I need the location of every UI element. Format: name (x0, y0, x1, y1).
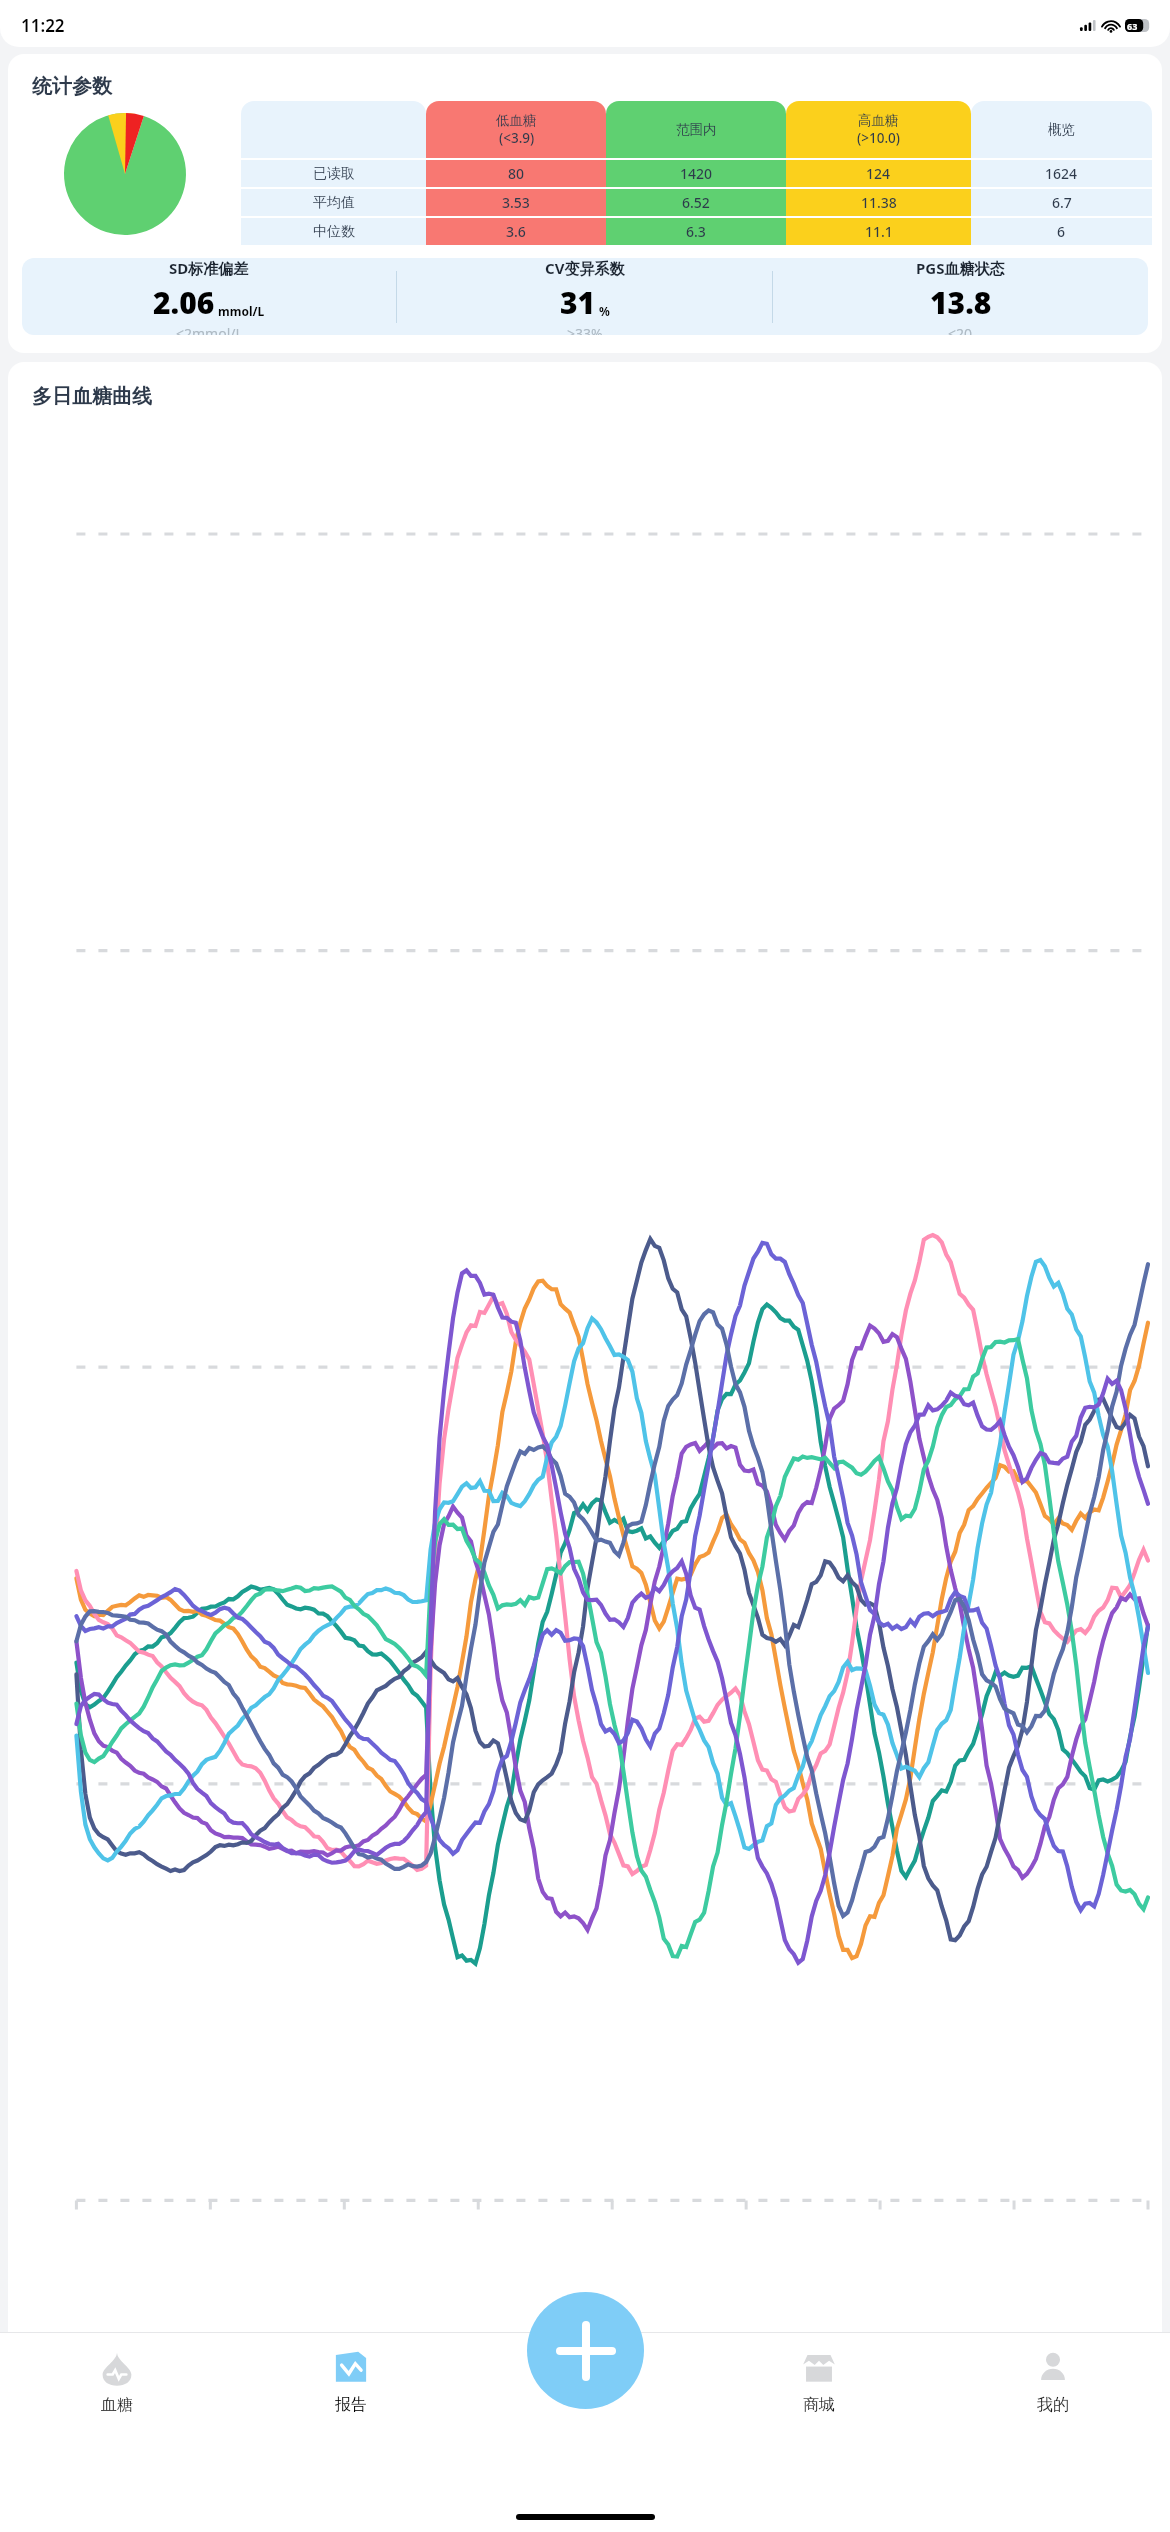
staticText: 已读取 (313, 165, 355, 183)
staticText: 6.3 (686, 222, 706, 241)
button[interactable]: Add record (527, 2292, 644, 2409)
staticText: 6 (1057, 222, 1066, 241)
staticText: 多日血糖曲线 (32, 384, 152, 409)
staticText: <2mmol/L (176, 324, 243, 335)
staticText: CV变异系数 (545, 258, 625, 278)
staticText: 63 (1127, 20, 1138, 32)
staticText: 平均值 (313, 194, 355, 212)
staticText: 6.7 (1052, 193, 1072, 212)
button[interactable]: 我的 (936, 2332, 1170, 2458)
button[interactable]: PGS血糖状态 (773, 258, 1148, 335)
staticText: 1624 (1045, 164, 1078, 183)
staticText: 高血糖 (858, 112, 899, 129)
staticText: 概览 (1048, 121, 1075, 138)
staticText: >33% (567, 324, 603, 335)
button[interactable]: 血糖 (0, 2332, 234, 2458)
staticText: 3.6 (506, 222, 526, 241)
staticText: SD标准偏差 (169, 258, 249, 278)
staticText: 6.52 (682, 193, 710, 212)
staticText: 血糖 (101, 2395, 133, 2415)
staticText: 80 (508, 164, 525, 183)
staticText: 低血糖 (496, 112, 537, 129)
button[interactable]: 商城 (702, 2332, 936, 2458)
staticText: 10-31 (582, 2501, 624, 2523)
button[interactable]: CV变异系数 (397, 258, 772, 335)
staticText: 1420 (680, 164, 713, 183)
staticText: (>10.0) (857, 129, 900, 147)
staticText: 我的 (1037, 2395, 1069, 2415)
staticText: (<3.9) (499, 129, 535, 147)
button[interactable]: SD标准偏差 (22, 258, 396, 335)
staticText: 31 (560, 282, 596, 323)
staticText: 中位数 (313, 223, 355, 241)
staticText: 3.53 (502, 193, 530, 212)
button[interactable]: 10-31 (547, 2501, 624, 2523)
staticText: 报告 (335, 2395, 367, 2415)
staticText: 11.38 (861, 193, 897, 212)
staticText: PGS血糖状态 (916, 258, 1005, 278)
staticText: 统计参数 (32, 74, 112, 99)
staticText: 范围内 (676, 121, 717, 138)
staticText: 11.1 (865, 222, 893, 241)
button[interactable]: 报告 (234, 2332, 468, 2458)
staticText: 13.8 (930, 282, 992, 323)
staticText: % (599, 303, 610, 319)
staticText: 11:22 (21, 14, 65, 37)
staticText: 2.06 (153, 282, 215, 323)
staticText: <20 (948, 324, 973, 335)
staticText: mmol/L (218, 303, 265, 319)
staticText: 124 (866, 164, 891, 183)
staticText: 商城 (803, 2395, 835, 2415)
